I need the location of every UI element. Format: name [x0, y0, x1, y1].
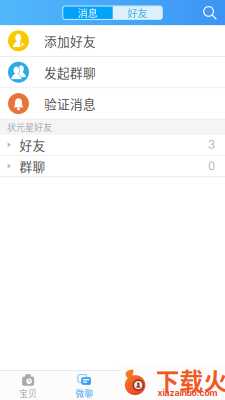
staticText: xiazaihuo.com	[157, 388, 217, 398]
staticText: 状元星好友	[7, 120, 52, 133]
button[interactable]: 微聊	[56, 371, 112, 400]
staticText: 我的	[188, 387, 206, 400]
staticText: 好友	[127, 5, 147, 20]
button[interactable]: 添加好友	[0, 25, 225, 57]
button[interactable]: 群聊	[0, 156, 225, 177]
staticText: 3	[208, 138, 215, 152]
staticText: 发起群聊	[44, 63, 96, 81]
staticText: 下载火	[155, 363, 225, 397]
button[interactable]: Search	[198, 1, 221, 24]
button[interactable]: 宝贝	[0, 371, 56, 400]
staticText: 发现	[132, 387, 150, 400]
staticText: 消息	[78, 5, 98, 20]
staticText: 好友	[19, 136, 45, 154]
button[interactable]: 验证消息	[0, 88, 225, 120]
button[interactable]: 我的	[169, 371, 225, 400]
staticText: 群聊	[19, 157, 45, 175]
button[interactable]: 消息	[63, 6, 113, 19]
button[interactable]: 发起群聊	[0, 57, 225, 88]
staticText: 验证消息	[44, 94, 96, 113]
button[interactable]: 发现	[112, 371, 169, 400]
staticText: 0	[208, 159, 215, 173]
staticText: 微聊	[75, 387, 93, 400]
button[interactable]: 好友	[0, 134, 225, 156]
staticText: 添加好友	[44, 32, 96, 50]
staticText: 宝贝	[19, 387, 37, 400]
button[interactable]: 好友	[113, 6, 162, 19]
